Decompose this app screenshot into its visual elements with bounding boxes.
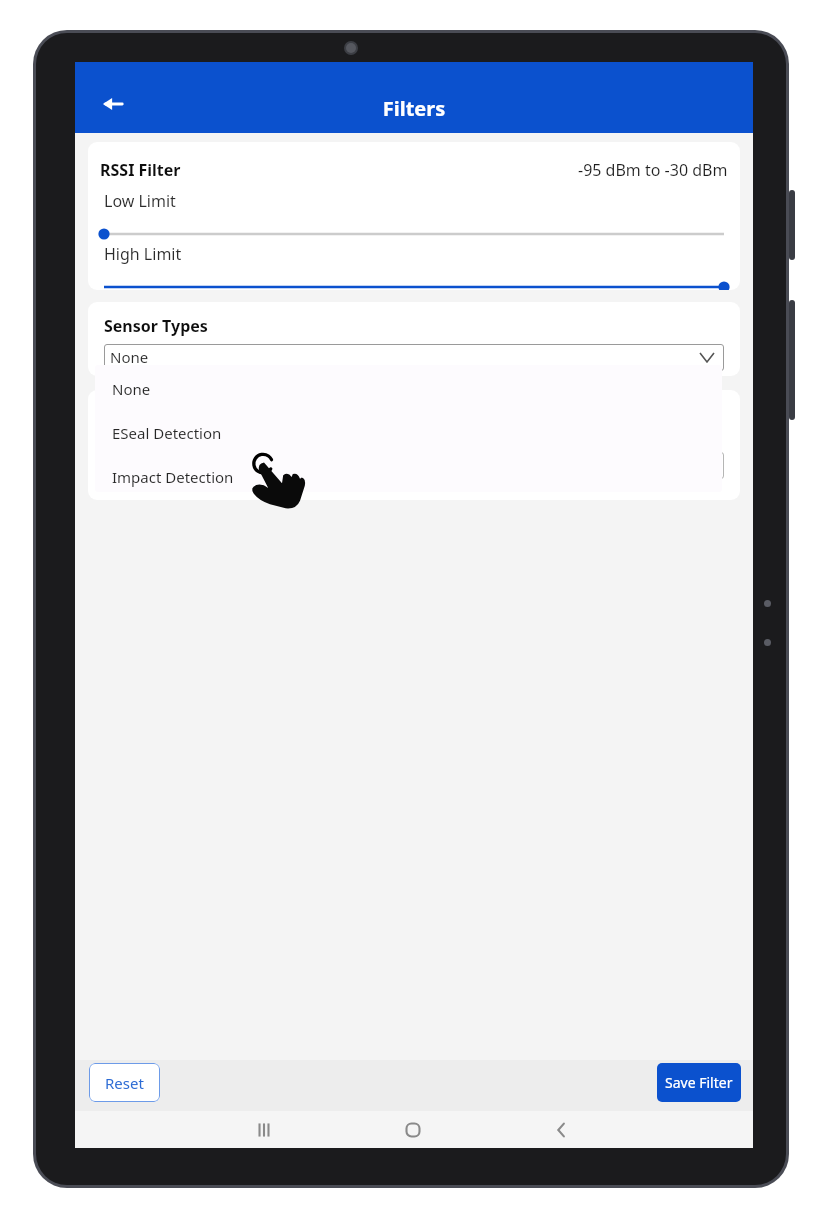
staticText: None bbox=[110, 347, 149, 367]
button[interactable]: Home bbox=[388, 1111, 438, 1148]
staticText: None bbox=[112, 379, 151, 399]
staticText: ESeal Detection bbox=[112, 423, 222, 443]
button[interactable]: Recent apps bbox=[239, 1111, 289, 1148]
button[interactable]: Back bbox=[93, 84, 133, 124]
button[interactable]: ESeal Detection bbox=[95, 418, 722, 448]
button[interactable]: Save Filter bbox=[657, 1063, 741, 1102]
button[interactable]: Impact Detection bbox=[95, 462, 722, 492]
staticText: Impact Detection bbox=[112, 467, 234, 487]
button[interactable]: Back bbox=[536, 1111, 586, 1148]
staticText: -95 dBm to -30 dBm bbox=[578, 159, 728, 181]
button[interactable]: None bbox=[104, 344, 724, 371]
staticText: Low Limit bbox=[104, 190, 176, 212]
button[interactable]: Reset bbox=[89, 1063, 160, 1102]
button[interactable]: None bbox=[95, 374, 722, 404]
staticText: Reset bbox=[105, 1073, 144, 1093]
button[interactable]: Slider bbox=[98, 224, 730, 244]
staticText: RSSI Filter bbox=[100, 159, 181, 181]
staticText: Save Filter bbox=[665, 1073, 733, 1092]
button[interactable]: Slider bbox=[98, 277, 730, 290]
staticText: High Limit bbox=[104, 243, 182, 265]
staticText: Sensor Types bbox=[104, 315, 208, 337]
staticText: Filters bbox=[75, 95, 753, 122]
